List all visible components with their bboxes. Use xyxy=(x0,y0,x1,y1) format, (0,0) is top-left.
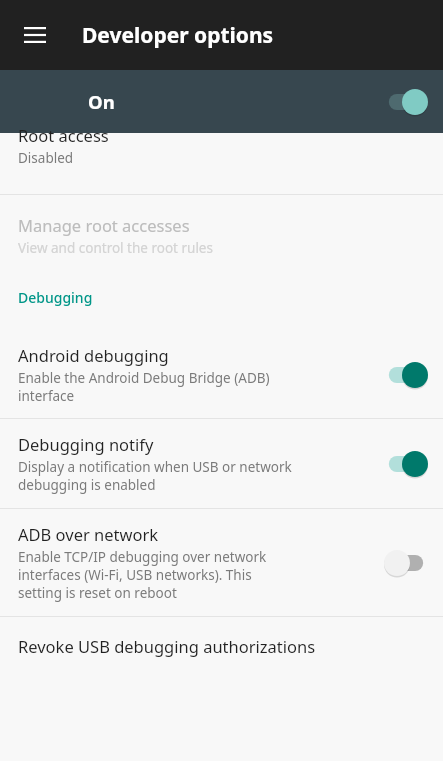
staticText: View and control the root rules xyxy=(18,239,213,257)
button[interactable]: Open navigation menu xyxy=(11,11,59,59)
staticText: Debugging xyxy=(18,288,93,307)
staticText: Display a notification when USB or netwo… xyxy=(18,458,292,494)
button[interactable]: On xyxy=(375,82,437,122)
button[interactable]: On xyxy=(375,355,437,395)
button[interactable]: On xyxy=(0,70,443,133)
button[interactable]: Root access xyxy=(0,133,443,194)
staticText: Root access xyxy=(18,124,109,146)
staticText: Developer options xyxy=(82,21,274,50)
button[interactable]: On xyxy=(375,444,437,484)
staticText: Android debugging xyxy=(18,344,169,366)
button[interactable]: ADB over network xyxy=(0,509,443,616)
button[interactable]: Off xyxy=(375,543,437,583)
staticText: Revoke USB debugging authorizations xyxy=(18,635,316,657)
staticText: Enable TCP/IP debugging over network int… xyxy=(18,548,267,602)
staticText: Debugging notify xyxy=(18,433,154,455)
button[interactable]: Android debugging xyxy=(0,339,443,418)
staticText: Manage root accesses xyxy=(18,214,190,236)
button[interactable]: Revoke USB debugging authorizations xyxy=(0,617,443,675)
staticText: ADB over network xyxy=(18,523,159,545)
staticText: On xyxy=(88,89,115,114)
staticText: Disabled xyxy=(18,149,74,167)
button[interactable]: Manage root accesses xyxy=(0,195,443,276)
staticText: Enable the Android Debug Bridge (ADB) in… xyxy=(18,369,270,405)
button[interactable]: Debugging notify xyxy=(0,419,443,508)
